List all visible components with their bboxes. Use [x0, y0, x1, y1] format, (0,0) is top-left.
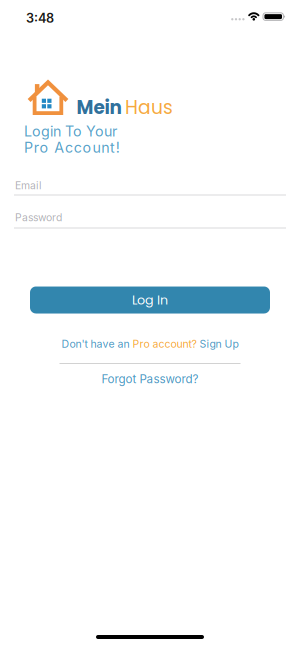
button[interactable]: Don't have an [61, 337, 238, 350]
staticText: Mein [76, 95, 121, 120]
staticText: Pro account? [132, 337, 196, 350]
staticText [15, 179, 18, 192]
button[interactable]: Log In [30, 286, 270, 313]
staticText: Email [15, 179, 42, 192]
textField[interactable] [15, 211, 287, 224]
button[interactable]: Forgot Password? [101, 372, 198, 386]
staticText [15, 211, 18, 224]
staticText: Haus [125, 94, 173, 121]
staticText: 3:48 [26, 10, 54, 26]
staticText: Password [15, 211, 62, 224]
staticText: Forgot Password? [101, 372, 198, 386]
staticText: Log In [132, 291, 168, 309]
textField[interactable] [15, 179, 287, 192]
staticText: Login To Your [24, 123, 117, 140]
staticText: Don't have an [61, 337, 132, 350]
staticText: Sign Up [196, 337, 238, 350]
staticText: Pro Account! [24, 139, 120, 156]
